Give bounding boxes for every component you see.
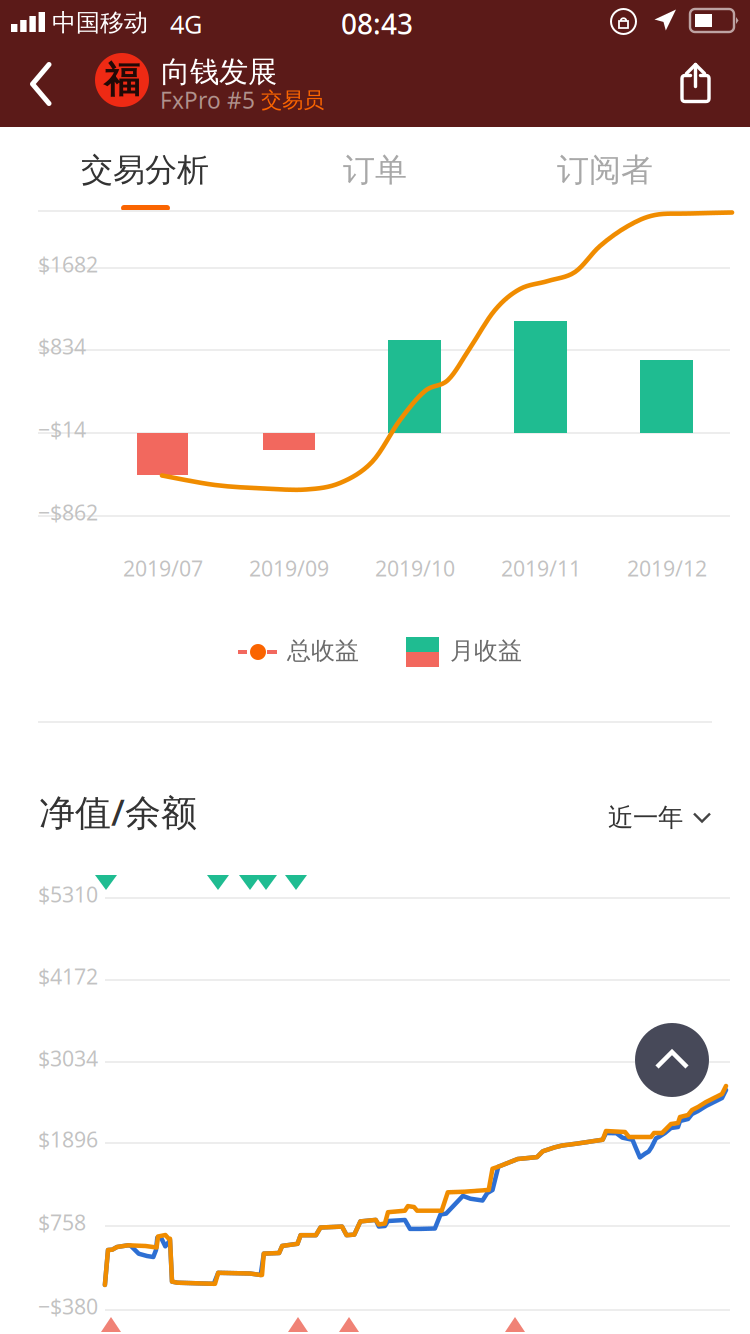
staticText: 月收益 xyxy=(450,636,522,665)
staticText: 2019/12 xyxy=(627,554,707,582)
button[interactable]: Back xyxy=(16,51,66,117)
staticText: 福 xyxy=(104,58,140,102)
button[interactable]: Scroll to top xyxy=(635,1023,709,1097)
staticText: FxPro #5 xyxy=(160,85,261,115)
staticText: 订阅者 xyxy=(557,150,653,190)
staticText: $1896 xyxy=(38,1125,98,1153)
staticText: 向钱发展 xyxy=(161,54,277,90)
staticText: 4G xyxy=(170,7,202,41)
staticText: 08:43 xyxy=(341,5,413,42)
staticText: 中国移动 xyxy=(52,8,148,37)
staticText: 净值/余额 xyxy=(39,788,197,836)
staticText: $3034 xyxy=(38,1044,98,1072)
button[interactable]: 订单 xyxy=(260,126,490,214)
staticText: $4172 xyxy=(38,962,98,990)
staticText: $5310 xyxy=(38,880,98,908)
staticText: 2019/07 xyxy=(123,554,203,582)
staticText: −$14 xyxy=(38,415,86,443)
button[interactable]: Share xyxy=(662,51,729,115)
staticText: $758 xyxy=(38,1208,86,1236)
staticText: 2019/09 xyxy=(249,554,329,582)
staticText: 2019/11 xyxy=(501,554,581,582)
staticText: $1682 xyxy=(38,250,98,278)
staticText: 2019/10 xyxy=(375,554,455,582)
staticText: $834 xyxy=(38,332,86,360)
staticText: 交易分析 xyxy=(81,150,209,190)
staticText: 订单 xyxy=(343,150,407,190)
button[interactable]: 近一年 xyxy=(600,790,719,845)
staticText: 交易员 xyxy=(261,87,324,113)
staticText: −$862 xyxy=(38,498,98,526)
staticText: 总收益 xyxy=(287,636,359,665)
button[interactable]: 交易分析 xyxy=(30,126,260,214)
button[interactable]: 订阅者 xyxy=(490,126,720,214)
staticText: 近一年 xyxy=(608,802,683,833)
staticText: −$380 xyxy=(38,1292,98,1320)
